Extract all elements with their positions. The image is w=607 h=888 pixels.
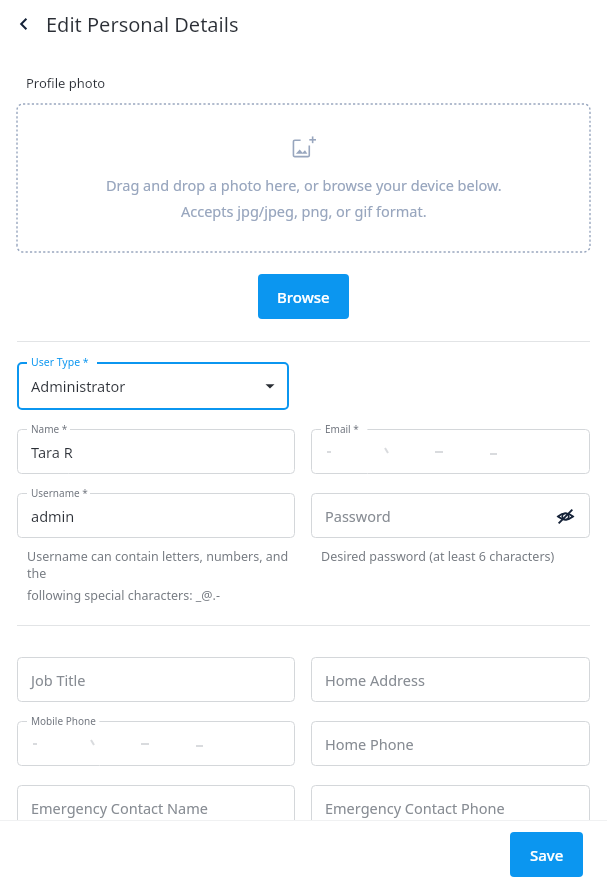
button[interactable]: Password <box>311 493 590 538</box>
staticText: Tara R <box>31 442 73 462</box>
button[interactable]: Home Phone <box>311 721 590 766</box>
staticText: Profile photo <box>26 74 106 92</box>
staticText: Mobile Phone <box>31 714 96 728</box>
button[interactable]: Job Title <box>17 657 295 702</box>
staticText: Username * <box>31 486 88 500</box>
button[interactable]: Drag and drop a photo here, or browse yo… <box>17 104 590 252</box>
staticText: Home Phone <box>325 734 414 754</box>
button[interactable]: Username * <box>17 493 295 538</box>
button[interactable]: Emergency Contact Phone <box>311 785 590 830</box>
staticText: Emergency Contact Name <box>31 798 208 818</box>
button[interactable]: User Type * <box>17 362 289 410</box>
staticText: Home Address <box>325 670 425 690</box>
button[interactable]: Browse <box>258 274 349 319</box>
button[interactable]: Show password <box>552 503 578 529</box>
staticText: User Type * <box>31 355 89 369</box>
staticText: Username can contain letters, numbers, a… <box>27 548 295 582</box>
button[interactable]: Emergency Contact Name <box>17 785 295 830</box>
staticText: Administrator <box>31 376 126 396</box>
staticText: Browse <box>277 287 330 307</box>
staticText: Password <box>325 506 391 526</box>
button[interactable]: Mobile Phone <box>17 721 295 766</box>
staticText: Emergency Contact Phone <box>325 798 505 818</box>
button[interactable]: Name * <box>17 429 295 474</box>
button[interactable]: Home Address <box>311 657 590 702</box>
staticText: Accepts jpg/jpeg, png, or gif format. <box>181 201 427 221</box>
staticText: Email * <box>325 422 359 436</box>
staticText: Save <box>530 845 564 865</box>
staticText: Drag and drop a photo here, or browse yo… <box>106 175 502 195</box>
button[interactable]: Email * <box>311 429 590 474</box>
staticText: Job Title <box>31 670 86 690</box>
staticText: admin <box>31 506 75 526</box>
staticText: Desired password (at least 6 characters) <box>321 548 555 565</box>
button[interactable]: Save <box>510 832 583 877</box>
button[interactable]: Back <box>8 8 40 40</box>
staticText: following special characters: _@.- <box>27 587 220 604</box>
staticText: Name * <box>31 422 68 436</box>
staticText: Edit Personal Details <box>46 11 239 38</box>
